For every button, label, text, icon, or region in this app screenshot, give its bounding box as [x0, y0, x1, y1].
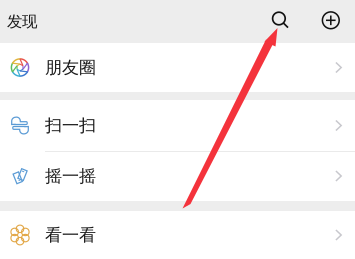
button[interactable]: 朋友圈 [0, 43, 355, 92]
staticText: 摇一摇 [45, 165, 96, 187]
button[interactable]: 扫一扫 [0, 100, 355, 151]
staticText: 朋友圈 [45, 57, 96, 78]
button[interactable]: Search [268, 9, 293, 34]
staticText: 看一看 [45, 224, 96, 246]
button[interactable]: 看一看 [0, 211, 355, 259]
staticText: 发现 [7, 12, 37, 31]
button[interactable]: Add [318, 8, 344, 35]
staticText: 扫一扫 [45, 115, 96, 136]
button[interactable]: 摇一摇 [0, 151, 355, 201]
